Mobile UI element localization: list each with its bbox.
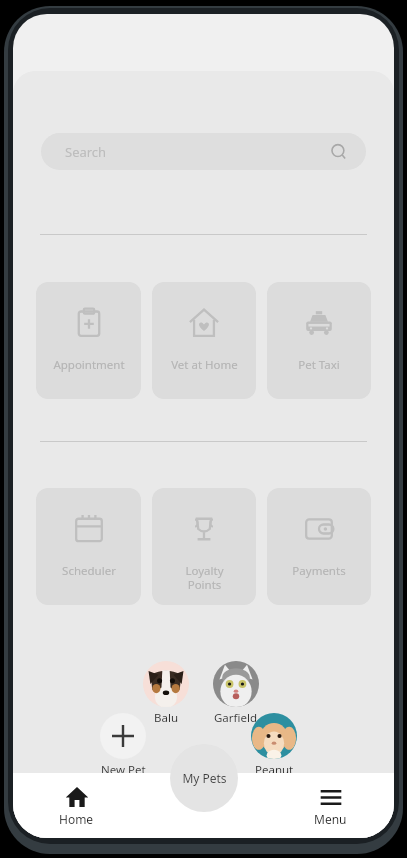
staticText: Garfield [214,710,258,726]
staticText: Home [59,811,94,827]
button[interactable]: Menu [267,773,394,838]
button[interactable]: Garfield [213,661,259,726]
other: Search [330,143,348,161]
button[interactable]: Search [41,133,366,170]
button[interactable]: Loyalty Points [152,488,256,605]
staticText: Loyalty Points [185,563,224,592]
button[interactable]: Pet Taxi [267,282,371,399]
button[interactable]: New Pet [100,713,146,778]
staticText: Scheduler [62,563,116,579]
button[interactable]: Scheduler [36,488,141,605]
staticText: New Pet [101,762,146,778]
staticText: Peanut [255,762,294,778]
button[interactable]: My Pets [170,744,238,812]
staticText: My Pets [182,770,227,786]
button[interactable]: Home [13,773,140,838]
button[interactable]: Vet at Home [152,282,256,399]
staticText: Payments [292,563,346,579]
button[interactable]: Appointment [36,282,141,399]
button[interactable]: Balu [143,661,189,726]
staticText: Vet at Home [171,357,238,373]
button[interactable]: Peanut [251,713,297,778]
button[interactable]: Payments [267,488,371,605]
staticText: Pet Taxi [298,357,340,373]
staticText: Appointment [53,357,125,373]
staticText: Search [65,143,107,161]
staticText: Balu [154,710,179,726]
staticText: Menu [314,811,347,827]
